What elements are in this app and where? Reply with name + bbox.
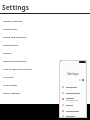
button[interactable]: General settings [0,19,90,27]
staticText: Sound and vibration [3,35,27,38]
staticText: Settings [67,72,79,76]
button[interactable]: Device maintenance [0,59,90,67]
staticText: Device maintenance [3,59,27,62]
staticText: Accessibility [3,83,18,86]
staticText: Notifications [3,43,19,46]
staticText: Settings [2,3,30,12]
button[interactable]: Notifications [0,43,90,51]
staticText: Connections [3,27,18,30]
button[interactable]: Accessibility [0,83,90,91]
staticText: Other settings [3,91,20,94]
button[interactable]: Accounts [0,75,90,83]
button[interactable]: Display [0,51,90,59]
button[interactable]: Other settings [0,91,90,99]
staticText: General settings [3,19,23,22]
button[interactable]: Lock screen and security [0,67,90,75]
staticText: Lock screen and security [3,67,32,70]
staticText: Accounts [3,75,14,78]
button[interactable]: Connections [0,27,90,35]
staticText: Display [3,51,12,54]
button[interactable]: Sound and vibration [0,35,90,43]
